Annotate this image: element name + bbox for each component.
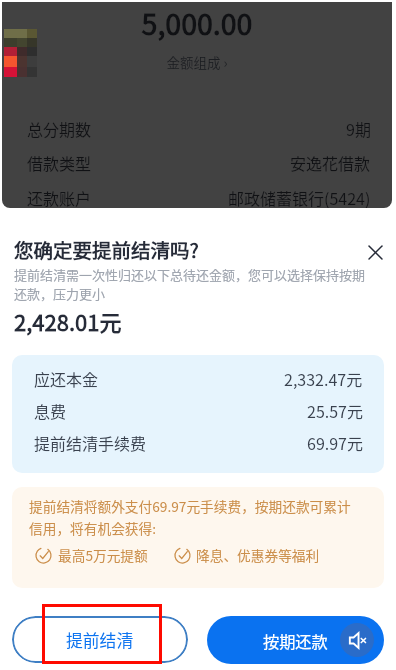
button[interactable]: 提前结清 (12, 616, 188, 663)
staticText: 借款类型 (27, 151, 92, 174)
staticText: 还款账户 (27, 186, 92, 208)
staticText: 提前结清手续费 (34, 431, 147, 454)
staticText: 提前结清需一次性归还以下总待还金额，您可以选择保持按期还款，压力更小 (14, 265, 372, 303)
staticText: 2,332.47元 (284, 367, 363, 390)
staticText: 69.97元 (307, 431, 363, 454)
staticText: 降息、优惠券等福利 (196, 545, 320, 565)
staticText: 9期 (346, 117, 371, 140)
button[interactable]: 按期还款 (207, 616, 384, 664)
staticText: 25.57元 (307, 399, 363, 422)
button[interactable]: 静音 (340, 623, 374, 657)
staticText: 金额组成 › (2, 52, 392, 72)
staticText: 2,428.01元 (14, 305, 122, 337)
staticText: 息费 (34, 399, 67, 422)
staticText: 按期还款 (263, 629, 328, 652)
staticText: 安逸花借款 (290, 151, 371, 174)
staticText: 邮政储蓄银行(5424) (228, 186, 371, 208)
staticText: 您确定要提前结清吗? (14, 235, 199, 263)
staticText: 总分期数 (27, 117, 92, 140)
staticText: 应还本金 (34, 367, 99, 390)
button[interactable]: 关闭 (362, 239, 389, 266)
staticText: 提前结清 (66, 628, 134, 652)
staticText: 最高5万元提额 (58, 545, 148, 565)
staticText: 5,000.00 (2, 2, 392, 43)
staticText: 提前结清将额外支付69.97元手续费，按期还款可累计信用，将有机会获得: (29, 496, 363, 538)
